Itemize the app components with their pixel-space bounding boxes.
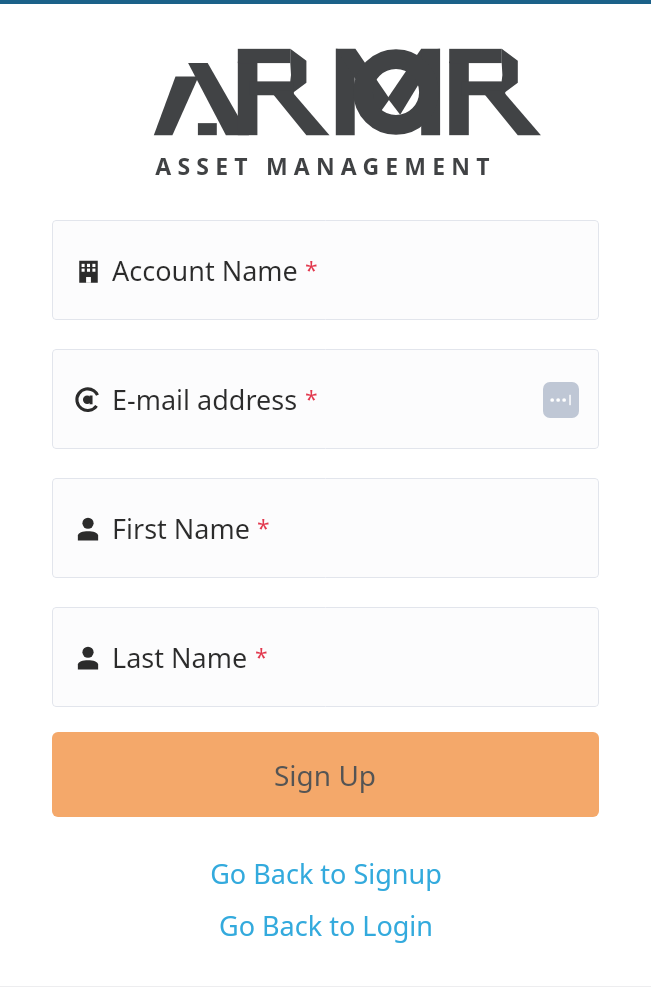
staticText: * [255, 641, 268, 672]
staticText: First Name [112, 510, 250, 547]
staticText: Last Name [112, 639, 248, 676]
staticText: Sign Up [274, 756, 377, 794]
button[interactable]: Go Back to Signup [52, 855, 599, 892]
button[interactable]: Sign Up [52, 732, 599, 817]
button[interactable]: Account Name [52, 220, 599, 320]
button[interactable]: E-mail address [52, 349, 599, 449]
button[interactable]: Go Back to Login [52, 907, 599, 944]
staticText: Account Name [112, 252, 298, 289]
staticText: Go Back to Login [219, 907, 433, 944]
button[interactable]: First Name [52, 478, 599, 578]
staticText: Go Back to Signup [210, 855, 442, 892]
staticText: * [257, 512, 270, 543]
staticText: ASSET MANAGEMENT [155, 150, 496, 181]
staticText: E-mail address [112, 381, 298, 418]
staticText: * [305, 383, 318, 414]
button[interactable]: Last Name [52, 607, 599, 707]
button[interactable]: Autofill password [543, 382, 579, 418]
staticText: * [305, 254, 318, 285]
